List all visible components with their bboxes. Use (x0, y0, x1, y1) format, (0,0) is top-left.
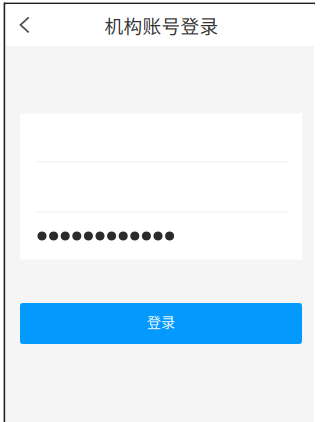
staticText: 机构账号登录 (104, 11, 218, 38)
button[interactable]: 登录 (20, 303, 302, 344)
button[interactable]: Back (6, 4, 43, 46)
staticText: 登录 (147, 311, 175, 331)
